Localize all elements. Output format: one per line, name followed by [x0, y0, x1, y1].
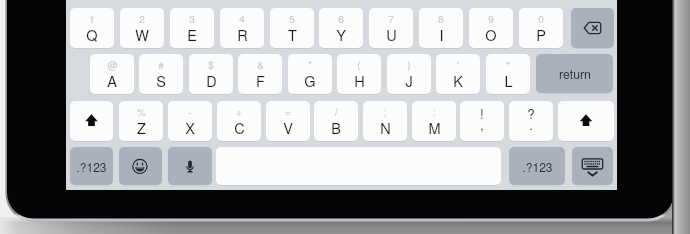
button[interactable]: Shift — [70, 101, 113, 141]
staticText: S — [156, 70, 166, 91]
staticText: ( — [357, 58, 361, 72]
staticText: Y — [336, 24, 346, 45]
button[interactable]: return — [536, 54, 613, 93]
staticText: 1 — [89, 12, 95, 26]
button[interactable]: V — [266, 101, 310, 141]
staticText: C — [234, 117, 245, 138]
button[interactable]: ! — [460, 101, 504, 141]
staticText: 4 — [239, 12, 245, 26]
button[interactable]: P — [519, 8, 563, 48]
staticText: 8 — [438, 12, 444, 26]
staticText: 0 — [538, 12, 544, 26]
button[interactable]: M — [412, 101, 456, 141]
staticText: = — [285, 105, 291, 119]
staticText: H — [354, 70, 365, 91]
staticText: ' — [457, 58, 459, 72]
staticText: " — [506, 58, 510, 72]
button[interactable]: A — [90, 54, 134, 94]
staticText: / — [335, 105, 338, 119]
staticText: ; — [384, 105, 387, 119]
staticText: - — [188, 105, 192, 119]
button[interactable]: C — [217, 101, 261, 141]
button[interactable]: Delete — [571, 8, 614, 48]
staticText: R — [237, 24, 248, 45]
button[interactable]: E — [170, 8, 214, 48]
staticText: 2 — [139, 12, 145, 26]
staticText: & — [257, 58, 264, 72]
staticText: Z — [137, 117, 146, 138]
button[interactable]: X — [168, 101, 212, 141]
staticText: G — [304, 70, 316, 91]
button[interactable]: K — [436, 54, 480, 94]
staticText: V — [283, 117, 293, 138]
button[interactable]: Shift — [558, 101, 614, 141]
staticText: ) — [407, 58, 411, 72]
button[interactable]: R — [220, 8, 264, 48]
staticText: : — [433, 105, 436, 119]
button[interactable]: F — [238, 54, 282, 94]
button[interactable]: T — [270, 8, 314, 48]
button[interactable]: L — [486, 54, 530, 94]
staticText: I — [439, 24, 444, 45]
staticText: O — [485, 24, 497, 45]
staticText: * — [308, 58, 312, 72]
button[interactable]: Emoji — [119, 147, 162, 185]
staticText: , — [480, 115, 484, 134]
button[interactable]: J — [387, 54, 431, 94]
staticText: E — [187, 24, 197, 45]
staticText: P — [536, 24, 546, 45]
staticText: . — [529, 115, 533, 134]
staticText: N — [380, 117, 391, 138]
button[interactable]: Hide keyboard — [572, 147, 613, 185]
staticText: ! — [480, 104, 484, 123]
staticText: % — [137, 105, 146, 119]
staticText: return — [559, 65, 591, 83]
button[interactable]: S — [139, 54, 183, 94]
staticText: .?123 — [76, 158, 107, 175]
button[interactable]: I — [419, 8, 463, 48]
staticText: ? — [527, 104, 535, 123]
staticText: + — [236, 105, 242, 119]
button[interactable]: U — [369, 8, 413, 48]
staticText: .?123 — [522, 158, 553, 175]
staticText: W — [135, 24, 149, 45]
staticText: X — [185, 117, 195, 138]
button[interactable]: N — [363, 101, 407, 141]
staticText: 6 — [338, 12, 344, 26]
staticText: J — [405, 70, 413, 91]
button[interactable]: Dictate — [168, 147, 212, 185]
staticText: 9 — [488, 12, 494, 26]
staticText: $ — [208, 58, 214, 72]
staticText: 3 — [189, 12, 195, 26]
staticText: B — [331, 117, 341, 138]
staticText: U — [386, 24, 397, 45]
staticText: D — [206, 70, 217, 91]
button[interactable]: Y — [319, 8, 363, 48]
button[interactable]: ? — [509, 101, 553, 141]
staticText: @ — [107, 58, 118, 72]
staticText: L — [504, 70, 513, 91]
button[interactable]: D — [189, 54, 233, 94]
button[interactable]: Z — [119, 101, 163, 141]
staticText: A — [107, 70, 117, 91]
button[interactable]: O — [469, 8, 513, 48]
button[interactable]: .?123 — [70, 147, 113, 185]
button[interactable]: W — [120, 8, 164, 48]
staticText: Q — [86, 24, 98, 45]
staticText: 7 — [388, 12, 394, 26]
staticText: 5 — [289, 12, 295, 26]
staticText: M — [428, 117, 441, 138]
staticText: K — [453, 70, 463, 91]
button[interactable]: G — [288, 54, 332, 94]
button[interactable]: .?123 — [509, 147, 565, 185]
button[interactable]: B — [314, 101, 358, 141]
staticText: # — [158, 58, 164, 72]
staticText: T — [288, 24, 297, 45]
button[interactable]: H — [337, 54, 381, 94]
button[interactable]: Q — [70, 8, 114, 48]
staticText: F — [256, 70, 265, 91]
